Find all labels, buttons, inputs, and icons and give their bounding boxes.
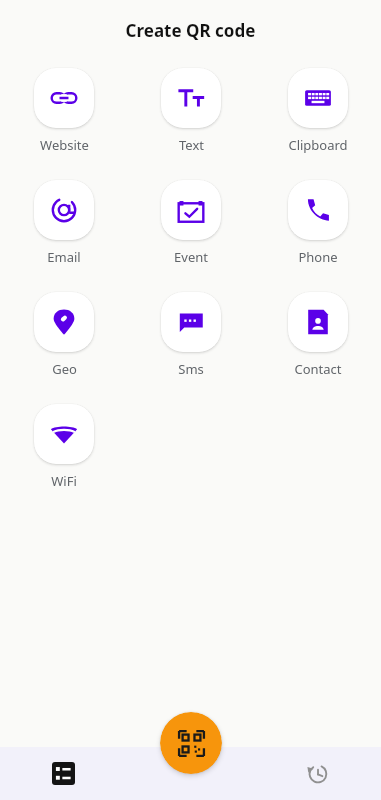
button[interactable]: Sms (157, 292, 225, 378)
button[interactable]: History (254, 747, 381, 800)
button[interactable]: Clipboard (284, 68, 352, 154)
button[interactable]: Email (30, 180, 98, 266)
button[interactable]: List (0, 747, 127, 800)
staticText: Text (179, 136, 204, 154)
button[interactable]: WiFi (30, 404, 98, 490)
button[interactable]: Text (157, 68, 225, 154)
staticText: Phone (298, 248, 338, 266)
staticText: WiFi (51, 472, 77, 490)
button[interactable]: Contact (284, 292, 352, 378)
button[interactable]: Phone (284, 180, 352, 266)
staticText: Event (174, 248, 208, 266)
button[interactable]: Geo (30, 292, 98, 378)
staticText: Email (47, 248, 81, 266)
staticText: Website (40, 136, 89, 154)
button[interactable]: Website (30, 68, 98, 154)
staticText: Geo (52, 360, 77, 378)
staticText: Sms (178, 360, 204, 378)
button[interactable]: Scan QR code (160, 712, 222, 774)
button[interactable]: Event (157, 180, 225, 266)
staticText: Contact (294, 360, 342, 378)
staticText: Create QR code (0, 19, 381, 42)
staticText: Clipboard (288, 136, 348, 154)
